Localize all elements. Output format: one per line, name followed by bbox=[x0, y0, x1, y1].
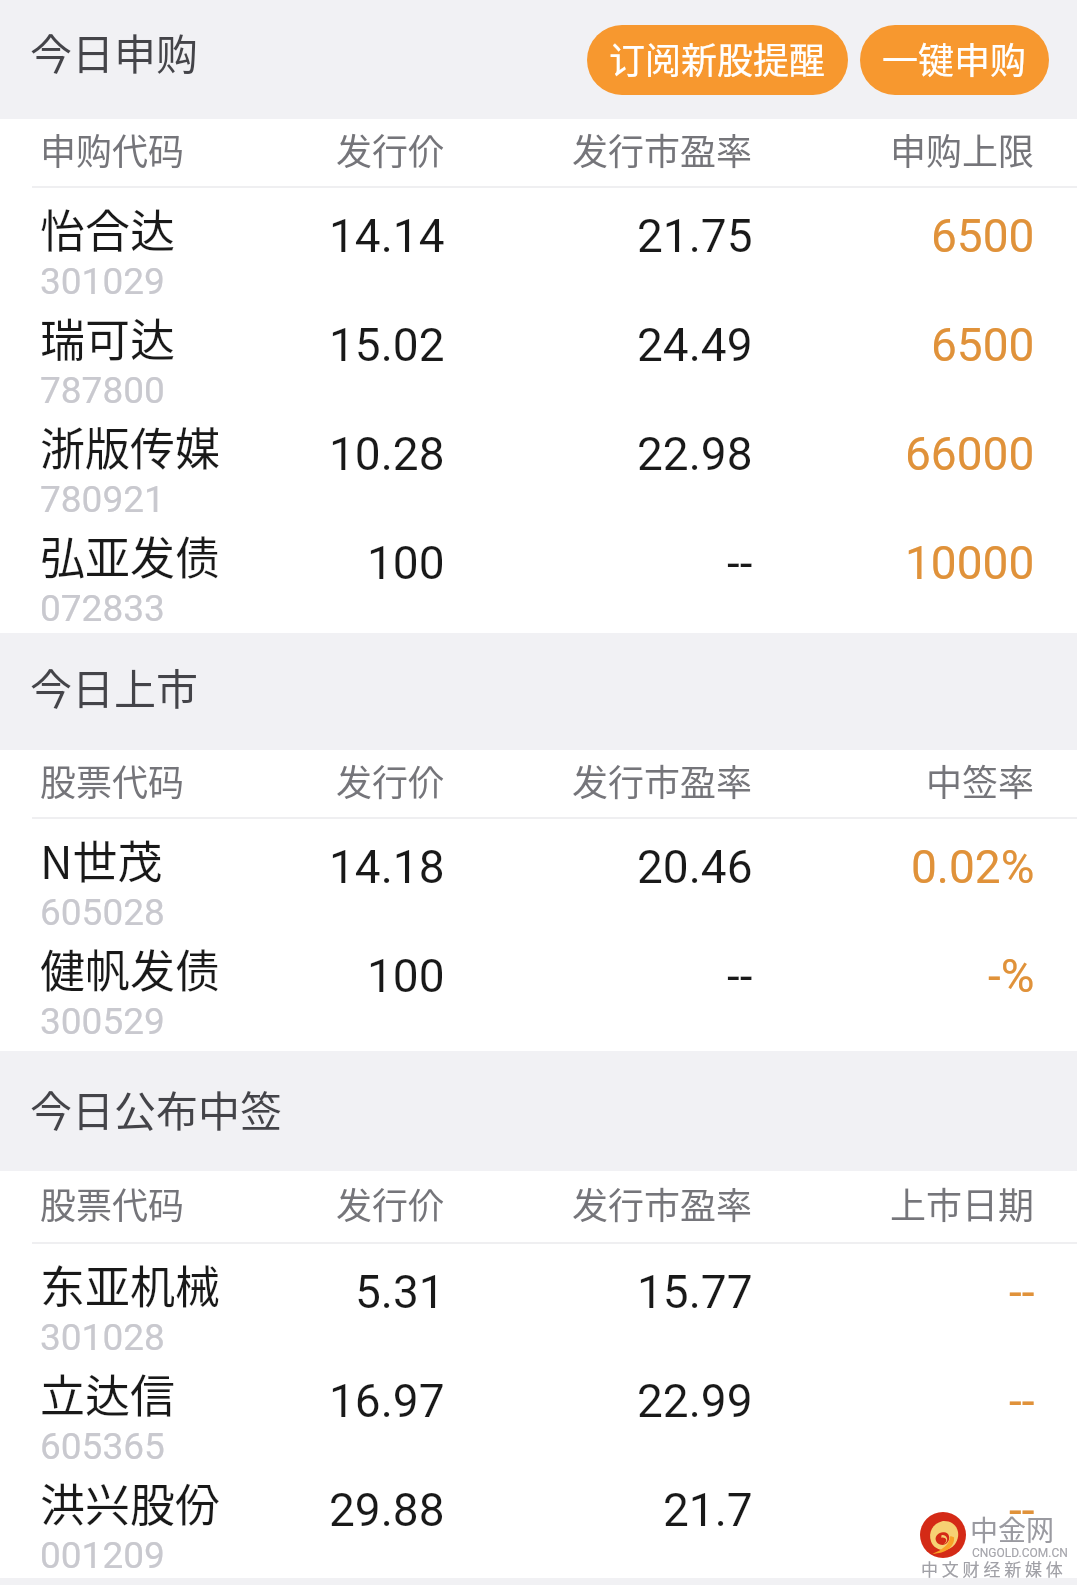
button[interactable]: 弘亚发债 bbox=[0, 515, 1077, 624]
staticText: 今日申购 bbox=[30, 21, 199, 82]
other: CNGOLD watermark bbox=[920, 1510, 1070, 1585]
button[interactable]: 今日上市 bbox=[0, 633, 1077, 750]
staticText: 15.77 bbox=[637, 1265, 753, 1319]
staticText: 股票代码 bbox=[40, 1177, 185, 1229]
staticText: 5.31 bbox=[355, 1265, 445, 1319]
staticText: 21.7 bbox=[663, 1483, 753, 1537]
staticText: 300529 bbox=[40, 1000, 165, 1043]
staticText: 29.88 bbox=[329, 1483, 445, 1537]
button[interactable]: 今日申购 bbox=[0, 0, 1077, 119]
staticText: 发行市盈率 bbox=[572, 754, 753, 806]
staticText: 股票代码 bbox=[40, 754, 185, 806]
staticText: 怡合达 bbox=[40, 196, 176, 261]
button[interactable]: 今日公布中签 bbox=[0, 1051, 1077, 1171]
staticText: -- bbox=[727, 949, 753, 1003]
staticText: 6500 bbox=[931, 209, 1035, 263]
staticText: 洪兴股份 bbox=[40, 1470, 221, 1535]
staticText: -- bbox=[727, 536, 753, 590]
staticText: 100 bbox=[367, 949, 445, 1003]
staticText: 发行市盈率 bbox=[572, 1177, 753, 1229]
staticText: 605028 bbox=[40, 891, 165, 934]
staticText: 瑞可达 bbox=[40, 305, 176, 370]
staticText: 22.98 bbox=[637, 427, 753, 481]
staticText: 24.49 bbox=[637, 318, 753, 372]
staticText: 立达信 bbox=[40, 1361, 176, 1426]
staticText: 780921 bbox=[40, 478, 165, 521]
staticText: 申购上限 bbox=[890, 123, 1035, 175]
staticText: 14.14 bbox=[329, 209, 445, 263]
staticText: 6500 bbox=[931, 318, 1035, 372]
staticText: 中 文 财 经 新 媒 体 bbox=[921, 1556, 1063, 1581]
staticText: 发行价 bbox=[336, 754, 445, 806]
staticText: 今日公布中签 bbox=[30, 1078, 283, 1139]
staticText: 14.18 bbox=[329, 840, 445, 894]
staticText: 66000 bbox=[905, 427, 1035, 481]
staticText: -% bbox=[988, 949, 1035, 1003]
staticText: 787800 bbox=[40, 369, 165, 412]
staticText: 15.02 bbox=[329, 318, 445, 372]
button[interactable]: 洪兴股份 bbox=[0, 1462, 1077, 1571]
staticText: 072833 bbox=[40, 587, 165, 630]
staticText: 0.02% bbox=[911, 840, 1035, 894]
button[interactable]: 怡合达 bbox=[0, 188, 1077, 297]
staticText: 001209 bbox=[40, 1534, 165, 1577]
button[interactable]: 一键申购 bbox=[860, 25, 1049, 95]
button[interactable]: 订阅新股提醒 bbox=[587, 25, 848, 95]
staticText: -- bbox=[1009, 1265, 1035, 1319]
staticText: 申购代码 bbox=[40, 123, 185, 175]
staticText: 22.99 bbox=[637, 1374, 753, 1428]
staticText: 10000 bbox=[905, 536, 1035, 590]
staticText: 中签率 bbox=[926, 754, 1035, 806]
staticText: 发行价 bbox=[336, 1177, 445, 1229]
staticText: 弘亚发债 bbox=[40, 523, 221, 588]
button[interactable]: 东亚机械 bbox=[0, 1244, 1077, 1353]
staticText: 发行价 bbox=[336, 123, 445, 175]
staticText: 健帆发债 bbox=[40, 936, 221, 1001]
staticText: 东亚机械 bbox=[40, 1252, 221, 1317]
staticText: 301029 bbox=[40, 260, 165, 303]
staticText: CNGOLD.COM.CN bbox=[972, 1546, 1068, 1560]
staticText: 上市日期 bbox=[890, 1177, 1035, 1229]
staticText: 605365 bbox=[40, 1425, 165, 1468]
staticText: -- bbox=[1009, 1483, 1035, 1537]
staticText: 今日上市 bbox=[30, 656, 199, 717]
button[interactable]: 立达信 bbox=[0, 1353, 1077, 1462]
staticText: 浙版传媒 bbox=[40, 414, 221, 479]
staticText: 一键申购 bbox=[882, 32, 1027, 84]
staticText: 中金网 bbox=[970, 1509, 1055, 1550]
button[interactable]: 瑞可达 bbox=[0, 297, 1077, 406]
button[interactable]: N世茂 bbox=[0, 819, 1077, 928]
button[interactable]: 浙版传媒 bbox=[0, 406, 1077, 515]
staticText: 20.46 bbox=[637, 840, 753, 894]
staticText: 订阅新股提醒 bbox=[609, 32, 826, 84]
button[interactable]: 健帆发债 bbox=[0, 928, 1077, 1037]
staticText: 100 bbox=[367, 536, 445, 590]
staticText: 301028 bbox=[40, 1316, 165, 1359]
staticText: -- bbox=[1009, 1374, 1035, 1428]
staticText: 发行市盈率 bbox=[572, 123, 753, 175]
staticText: 16.97 bbox=[329, 1374, 445, 1428]
staticText: 21.75 bbox=[637, 209, 753, 263]
staticText: N世茂 bbox=[40, 827, 163, 892]
staticText: 10.28 bbox=[329, 427, 445, 481]
